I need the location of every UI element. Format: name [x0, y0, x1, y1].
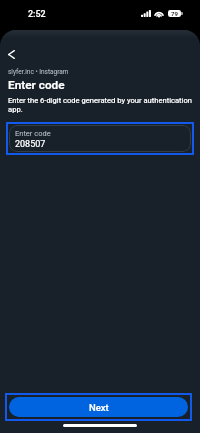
button[interactable]: Next	[9, 397, 188, 417]
staticText: 2:52	[28, 9, 46, 20]
button[interactable]: Back	[0, 43, 23, 66]
staticText: Enter code	[15, 129, 51, 138]
staticText: Enter the 6-digit code generated by your…	[8, 96, 195, 114]
staticText: 79	[171, 10, 178, 17]
staticText: 208507	[15, 139, 46, 150]
button[interactable]: Enter code	[9, 125, 191, 152]
staticText: Next	[89, 402, 109, 413]
staticText: slyfer.inc • Instagram	[8, 68, 69, 76]
staticText: Enter code	[8, 78, 65, 92]
